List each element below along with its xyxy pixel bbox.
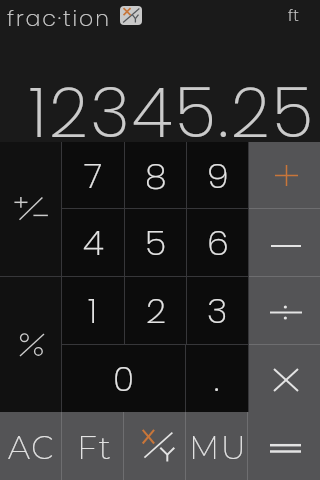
staticText: ft [288,4,299,26]
button[interactable]: X over Y fraction [124,412,185,480]
staticText: 2 [146,286,166,335]
staticText: 0 [113,354,135,403]
button[interactable]: 1 [62,277,124,344]
staticText: frac·tion [7,3,111,33]
button[interactable]: All clear [0,412,61,480]
staticText: Ft [77,429,113,467]
button[interactable]: 0 [62,345,185,412]
staticText: 3 [207,286,228,335]
button[interactable]: Multiply [249,345,320,412]
button[interactable]: frac·tion [7,3,111,33]
button[interactable]: Equals [248,412,319,480]
button[interactable]: 6 [187,209,248,276]
button[interactable]: Fraction format [120,6,142,25]
staticText: 7 [84,151,103,200]
button[interactable]: Percent [0,277,61,412]
staticText: 12345.25 [29,66,316,161]
button[interactable]: 3 [187,277,248,344]
staticText: 4 [83,218,104,267]
staticText: 1 [88,286,98,335]
button[interactable]: 9 [187,142,248,208]
staticText: 9 [207,151,229,200]
button[interactable]: Feet [62,412,123,480]
staticText: AC [8,429,55,467]
staticText: 5 [145,218,167,267]
staticText: 6 [207,218,229,267]
button[interactable]: Plus minus [0,142,61,276]
button[interactable]: Add [249,142,320,208]
button[interactable]: Markup [186,412,247,480]
button[interactable]: ft [288,4,299,26]
button[interactable]: 5 [125,209,186,276]
button[interactable]: 8 [125,142,186,208]
button[interactable]: . [186,345,248,412]
button[interactable]: 4 [62,209,124,276]
button[interactable]: 2 [125,277,186,344]
button[interactable]: Divide [249,277,320,344]
button[interactable]: Subtract [249,209,320,276]
button[interactable]: 7 [62,142,124,208]
staticText: 8 [145,151,167,200]
staticText: MU [189,429,248,467]
staticText: . [214,354,220,403]
